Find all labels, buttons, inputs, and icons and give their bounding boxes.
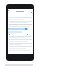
button[interactable] xyxy=(8,28,28,30)
